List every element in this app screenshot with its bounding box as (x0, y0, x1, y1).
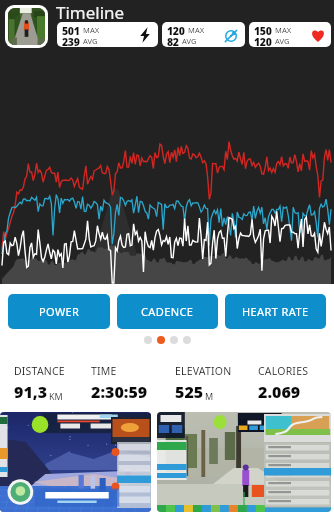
button[interactable]: HEART RATE (225, 294, 326, 329)
staticText: 150 (254, 24, 272, 35)
staticText: TIME (91, 364, 117, 378)
staticText: 120 (167, 24, 185, 35)
staticText: Timeline (56, 1, 125, 24)
staticText: AVG (83, 36, 98, 46)
button[interactable]: Ride screenshot 1 (0, 412, 151, 512)
button[interactable]: 501 (57, 22, 158, 47)
staticText: 91,3 (14, 381, 48, 403)
staticText: M (205, 390, 214, 402)
staticText: POWER (39, 304, 80, 319)
staticText: CADENCE (141, 304, 194, 319)
staticText: 525 (175, 381, 204, 403)
button[interactable]: 150 (249, 22, 331, 47)
staticText: 501 (62, 24, 80, 35)
staticText: AVG (182, 36, 197, 46)
button[interactable]: CADENCE (117, 294, 218, 329)
button[interactable]: Ride screenshot 2 (157, 412, 331, 512)
staticText: 120 (254, 35, 272, 46)
staticText: MAX (188, 25, 205, 35)
staticText: MAX (275, 25, 292, 35)
staticText: 239 (62, 35, 80, 46)
staticText: MAX (83, 25, 100, 35)
staticText: ELEVATION (175, 364, 232, 378)
button[interactable]: POWER (8, 294, 110, 329)
button[interactable]: 120 (162, 22, 245, 47)
staticText: 2.069 (258, 381, 301, 403)
staticText: AVG (275, 36, 290, 46)
staticText: 2:30:59 (91, 381, 148, 403)
staticText: HEART RATE (242, 304, 309, 319)
staticText: DISTANCE (14, 364, 65, 378)
staticText: CALORIES (258, 364, 309, 378)
staticText: KM (49, 390, 63, 402)
button[interactable]: Activity photo (8, 8, 45, 45)
staticText: 82 (167, 35, 179, 46)
